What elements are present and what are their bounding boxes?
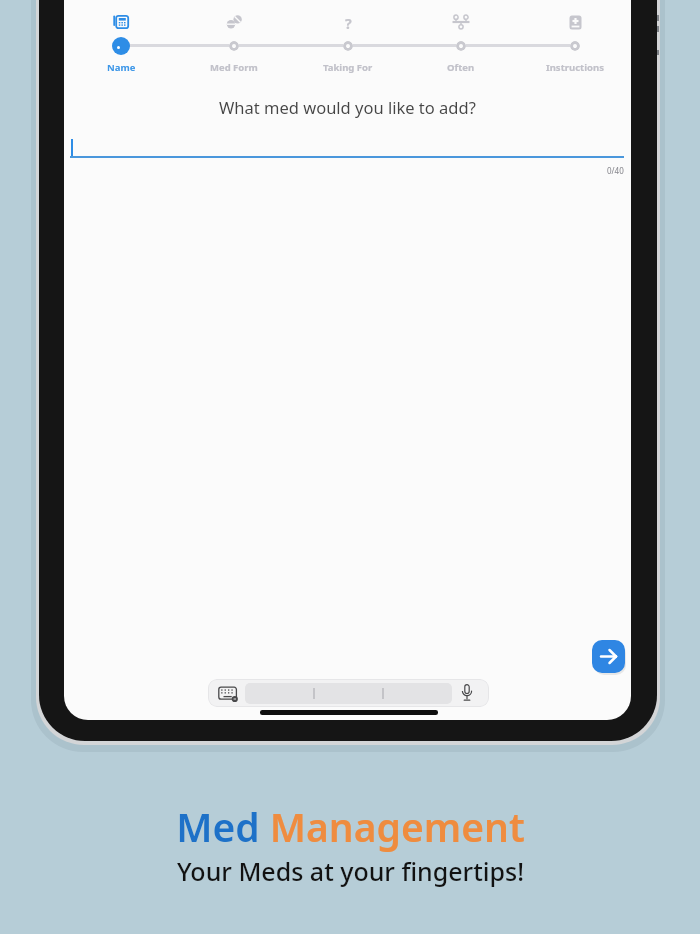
button[interactable] — [566, 14, 584, 30]
staticText: Your Meds at your fingertips! — [177, 854, 524, 888]
staticText: 0/40 — [607, 165, 624, 176]
staticText: ? — [345, 14, 352, 30]
button[interactable] — [461, 684, 473, 703]
button[interactable] — [245, 683, 452, 704]
button[interactable]: ? — [339, 14, 357, 30]
button[interactable] — [592, 640, 625, 673]
button[interactable] — [112, 14, 130, 30]
staticText: Often — [447, 61, 475, 74]
staticText: Name — [107, 61, 136, 74]
button[interactable] — [70, 138, 624, 168]
button[interactable] — [225, 14, 243, 30]
staticText: Med Form — [210, 61, 258, 74]
staticText: Med Management — [176, 800, 525, 852]
button[interactable] — [452, 14, 470, 30]
staticText: What med would you like to add? — [219, 96, 476, 118]
staticText: Taking For — [323, 61, 373, 74]
button[interactable] — [218, 686, 241, 703]
staticText: Instructions — [546, 61, 604, 74]
